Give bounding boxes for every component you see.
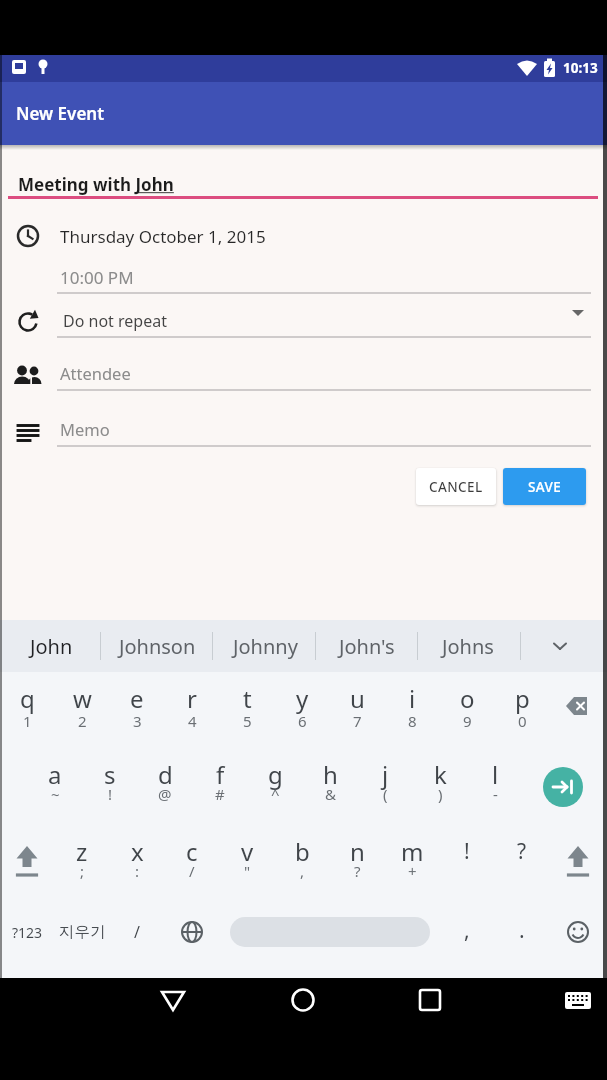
button[interactable]: [330, 828, 384, 886]
staticText: c: [186, 835, 198, 868]
button[interactable]: [138, 752, 192, 810]
staticText: New Event: [16, 102, 105, 125]
button[interactable]: [165, 678, 219, 736]
staticText: Johnny: [233, 633, 298, 660]
staticText: -: [493, 784, 498, 804]
button[interactable]: [55, 678, 109, 736]
staticText: 0: [518, 711, 527, 731]
button[interactable]: [551, 828, 605, 886]
staticText: @: [158, 784, 172, 804]
staticText: &: [325, 784, 336, 804]
button[interactable]: [270, 975, 336, 1025]
button[interactable]: [40, 409, 600, 449]
button[interactable]: [40, 255, 600, 295]
staticText: 지우기: [59, 922, 106, 942]
button[interactable]: [385, 678, 439, 736]
staticText: ~: [51, 784, 60, 804]
staticText: :: [135, 861, 140, 881]
staticText: John: [30, 633, 73, 660]
staticText: John's: [339, 633, 395, 660]
button[interactable]: [551, 905, 605, 960]
button[interactable]: [275, 828, 329, 886]
button[interactable]: [0, 678, 54, 736]
button[interactable]: New Event: [0, 82, 607, 145]
staticText: 5: [243, 711, 252, 731]
button[interactable]: [440, 828, 494, 886]
staticText: ;: [80, 861, 85, 881]
button[interactable]: [495, 828, 549, 886]
staticText: y: [296, 682, 309, 715]
button[interactable]: [230, 917, 430, 947]
staticText: l: [492, 758, 499, 791]
button[interactable]: [40, 211, 600, 261]
button[interactable]: [468, 752, 522, 810]
staticText: 9: [463, 711, 472, 731]
button[interactable]: SAVE: [503, 468, 586, 505]
staticText: /: [189, 861, 195, 881]
staticText: v: [241, 835, 254, 868]
button[interactable]: [110, 828, 164, 886]
button[interactable]: Meeting with John: [18, 159, 174, 209]
staticText: p: [515, 682, 530, 715]
staticText: +: [408, 861, 417, 881]
button[interactable]: [55, 828, 109, 886]
button[interactable]: [0, 905, 54, 960]
staticText: ,: [300, 861, 305, 881]
button[interactable]: John: [0, 622, 103, 670]
staticText: w: [73, 682, 92, 715]
button[interactable]: Johnson: [105, 622, 209, 670]
button[interactable]: John's: [315, 622, 419, 670]
button[interactable]: [551, 678, 605, 736]
button[interactable]: [28, 752, 82, 810]
button[interactable]: [553, 980, 603, 1020]
button[interactable]: [0, 828, 54, 886]
staticText: s: [104, 758, 116, 791]
button[interactable]: [275, 678, 329, 736]
button[interactable]: [540, 764, 586, 810]
staticText: h: [323, 758, 338, 791]
staticText: !: [464, 837, 470, 866]
button[interactable]: [110, 678, 164, 736]
button[interactable]: [495, 678, 549, 736]
button[interactable]: [110, 905, 164, 960]
staticText: 3: [133, 711, 142, 731]
button[interactable]: Johns: [416, 622, 520, 670]
button[interactable]: [385, 828, 439, 886]
button[interactable]: [413, 752, 467, 810]
button[interactable]: [358, 752, 412, 810]
button[interactable]: [165, 828, 219, 886]
button[interactable]: [220, 828, 274, 886]
staticText: r: [187, 682, 197, 715]
staticText: f: [216, 758, 225, 791]
staticText: q: [20, 682, 35, 715]
button[interactable]: [495, 905, 549, 960]
button[interactable]: [248, 752, 302, 810]
staticText: j: [382, 758, 389, 791]
staticText: Meeting with John: [18, 173, 174, 196]
staticText: o: [460, 682, 475, 715]
button[interactable]: [330, 678, 384, 736]
staticText: m: [401, 835, 424, 868]
button[interactable]: CANCEL: [416, 468, 496, 505]
button[interactable]: [83, 752, 137, 810]
staticText: 10:00 PM: [60, 266, 134, 289]
button[interactable]: [165, 905, 219, 960]
staticText: /: [134, 921, 140, 943]
button[interactable]: [40, 353, 600, 393]
button[interactable]: [440, 678, 494, 736]
button[interactable]: [193, 752, 247, 810]
button[interactable]: [55, 905, 109, 960]
button[interactable]: [220, 678, 274, 736]
button[interactable]: [440, 905, 494, 960]
button[interactable]: [397, 975, 463, 1025]
button[interactable]: [140, 975, 206, 1025]
staticText: 7: [353, 711, 362, 731]
button[interactable]: Johnny: [213, 622, 317, 670]
staticText: e: [130, 682, 144, 715]
staticText: u: [350, 682, 365, 715]
staticText: d: [158, 758, 173, 791]
staticText: ): [438, 784, 443, 804]
button[interactable]: [40, 300, 600, 340]
button[interactable]: [540, 622, 588, 670]
button[interactable]: [303, 752, 357, 810]
